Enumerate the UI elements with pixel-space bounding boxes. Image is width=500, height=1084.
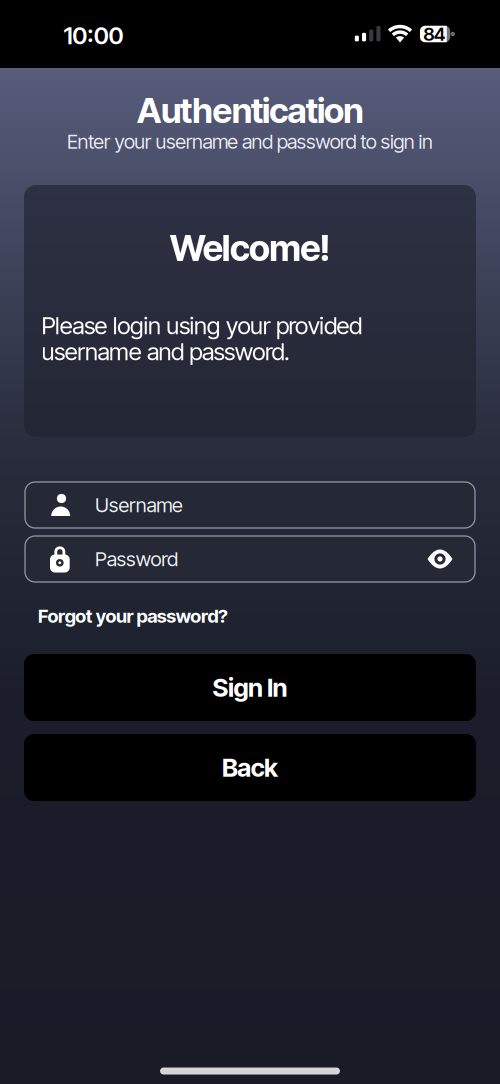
staticText: Back bbox=[222, 753, 278, 782]
staticText: Forgot your password? bbox=[38, 605, 228, 627]
staticText: 10:00 bbox=[64, 21, 123, 50]
staticText: Enter your username and password to sign… bbox=[67, 130, 433, 153]
button[interactable]: Username bbox=[25, 482, 475, 528]
button[interactable] bbox=[420, 539, 460, 579]
button[interactable]: Back bbox=[24, 734, 476, 801]
staticText: Username bbox=[95, 493, 183, 517]
staticText: Welcome! bbox=[170, 227, 330, 269]
staticText: Please login using your provided usernam… bbox=[41, 311, 362, 365]
button[interactable]: Forgot your password? bbox=[38, 605, 462, 627]
staticText: Password bbox=[95, 547, 178, 571]
button[interactable]: Sign In bbox=[24, 654, 476, 721]
button[interactable]: Password bbox=[25, 536, 475, 582]
staticText: 84 bbox=[423, 23, 446, 45]
staticText: Authentication bbox=[137, 90, 363, 131]
staticText: Sign In bbox=[212, 673, 287, 702]
